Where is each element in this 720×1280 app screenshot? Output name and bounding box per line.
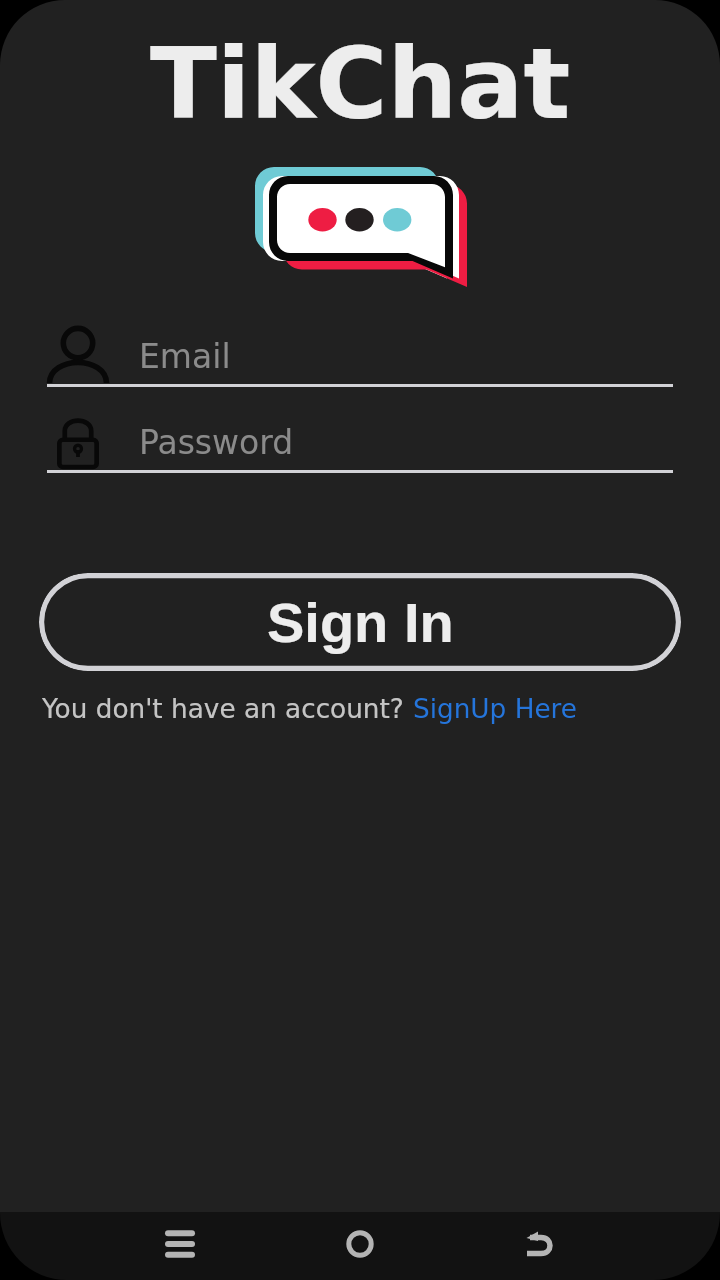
button[interactable]: Password xyxy=(47,404,673,473)
button[interactable]: Sign In xyxy=(39,573,681,671)
staticText: Email xyxy=(139,337,231,375)
staticText: TikChat xyxy=(150,27,571,141)
button[interactable]: Home xyxy=(326,1212,394,1278)
staticText: Sign In xyxy=(267,591,454,654)
button[interactable]: Email xyxy=(47,318,673,387)
staticText: Password xyxy=(139,423,294,461)
staticText: SignUp Here xyxy=(413,694,578,725)
button[interactable]: Back xyxy=(506,1212,574,1278)
button[interactable]: Recent apps xyxy=(146,1212,214,1278)
button[interactable]: SignUp Here xyxy=(413,694,578,725)
staticText: You don't have an account? xyxy=(42,694,413,725)
